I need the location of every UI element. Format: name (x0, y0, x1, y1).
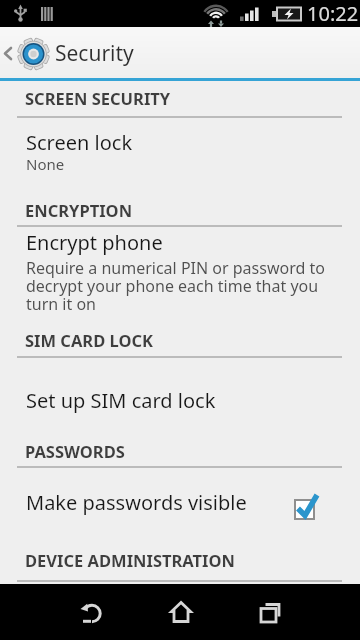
staticText: SIM CARD LOCK (25, 329, 154, 351)
staticText: PASSWORDS (25, 440, 125, 462)
button[interactable]: Screen lock (0, 121, 360, 189)
staticText: Security (55, 39, 134, 68)
staticText: None (26, 154, 65, 174)
staticText: ENCRYPTION (25, 199, 133, 221)
button[interactable]: Encrypt phone (0, 226, 360, 326)
staticText: Set up SIM card lock (26, 387, 216, 414)
staticText: DEVICE ADMINISTRATION (25, 549, 235, 571)
staticText: 10:22 (307, 0, 359, 27)
button[interactable]: Set up SIM card lock (0, 366, 360, 426)
button[interactable] (62, 584, 122, 640)
staticText: Make passwords visible (26, 489, 247, 516)
staticText: Screen lock (26, 129, 133, 156)
button[interactable]: Make passwords visible (0, 471, 360, 531)
button[interactable] (240, 584, 300, 640)
staticText: SCREEN SECURITY (25, 87, 171, 109)
button[interactable]: Security (0, 27, 360, 78)
staticText: Encrypt phone (26, 229, 163, 256)
button[interactable] (151, 584, 211, 640)
staticText: Require a numerical PIN or password to d… (26, 257, 325, 315)
